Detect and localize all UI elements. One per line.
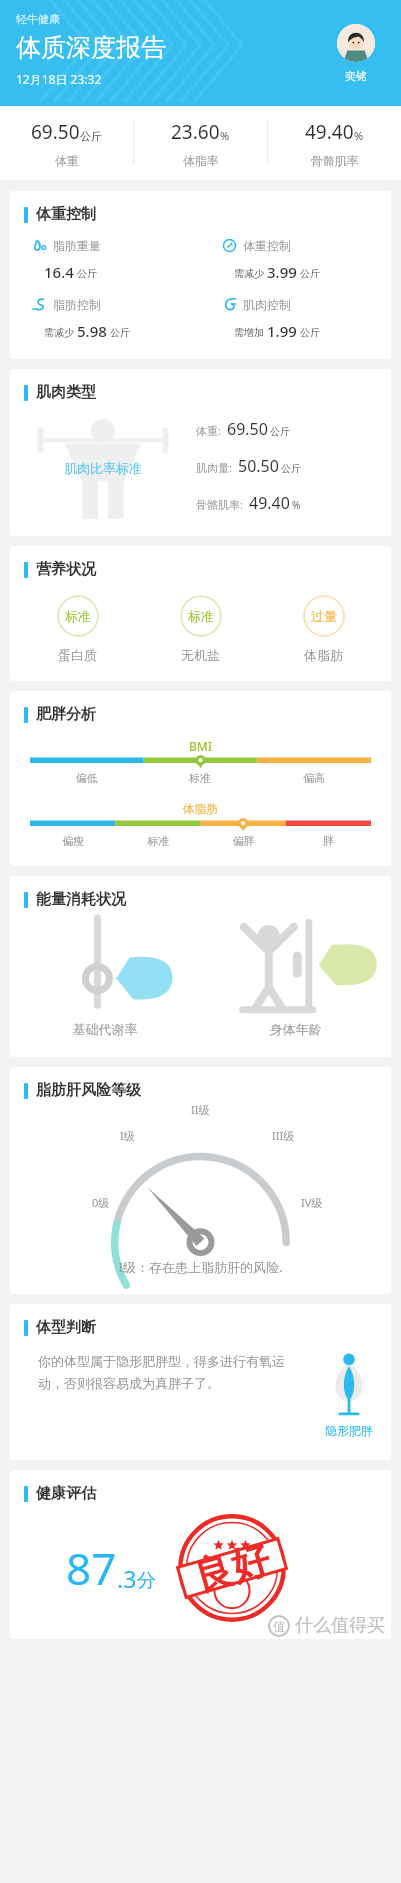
button[interactable]: 过量 — [262, 595, 385, 663]
staticText: 公斤 — [270, 425, 290, 438]
staticText: 体型判断 — [36, 1318, 96, 1337]
staticText: 公斤 — [281, 462, 301, 475]
staticText: % — [292, 498, 301, 512]
staticText: 什么值得买 — [295, 1614, 385, 1637]
staticText: 奕铭 — [345, 69, 367, 83]
staticText: 轻牛健康 — [16, 12, 60, 26]
staticText: 身体年龄 — [200, 1021, 391, 1037]
staticText: 健康评估 — [36, 1484, 96, 1503]
staticText: 肌肉比率标准 — [64, 460, 142, 476]
staticText: 胖 — [286, 834, 371, 848]
staticText: 体脂肪 — [30, 801, 371, 816]
staticText: 脂肪控制 — [53, 297, 101, 312]
staticText: I级：存在患上脂肪肝的风险. — [10, 1258, 391, 1276]
staticText: 脂肪肝风险等级 — [36, 1081, 141, 1100]
staticText: 隐形肥胖 — [325, 1423, 373, 1438]
button[interactable]: 体重控制 — [200, 238, 391, 282]
staticText: 5.98 — [77, 321, 107, 341]
staticText: 脂肪重量 — [53, 238, 101, 253]
staticText: 你的体型属于隐形肥胖型，得多进行有氧运动，否则很容易成为真胖子了。 — [38, 1353, 299, 1392]
staticText: 需减少 — [44, 326, 74, 339]
staticText: 69.50 — [31, 119, 80, 145]
button[interactable]: 69.50 — [0, 106, 133, 180]
staticText: 49.40 — [249, 492, 290, 514]
staticText: 能量消耗状况 — [36, 890, 126, 909]
staticText: III级 — [272, 1128, 295, 1143]
staticText: 肌肉量: — [196, 460, 232, 475]
staticText: 体重 — [55, 153, 79, 168]
button[interactable]: 脂肪控制 — [10, 297, 200, 341]
staticText: 体脂肪 — [304, 647, 343, 663]
button[interactable]: 肌肉控制 — [200, 297, 391, 341]
staticText: 标准 — [143, 771, 257, 785]
staticText: 标准 — [188, 608, 214, 624]
staticText: 偏瘦 — [30, 834, 116, 848]
staticText: 需减少 — [234, 267, 264, 280]
staticText: 偏低 — [30, 771, 143, 785]
staticText: 值 — [273, 1619, 285, 1634]
staticText: 16.4 — [44, 262, 74, 282]
button[interactable]: 49.40 — [268, 106, 401, 180]
staticText: 肌肉类型 — [36, 383, 96, 402]
staticText: 过量 — [311, 608, 337, 624]
button[interactable]: 隐形肥胖 — [307, 1353, 391, 1438]
staticText: 肥胖分析 — [36, 705, 96, 724]
staticText: 骨骼肌率 — [311, 153, 359, 168]
staticText: 无机盐 — [181, 647, 220, 663]
staticText: 体重控制 — [243, 238, 291, 253]
staticText: 基础代谢率 — [10, 1021, 200, 1037]
staticText: 体质深度报告 — [16, 32, 166, 63]
staticText: 标准 — [116, 834, 201, 848]
staticText: 12月18日 23:32 — [16, 71, 102, 87]
staticText: 良好 — [189, 1534, 275, 1602]
button[interactable]: 标准 — [139, 595, 262, 663]
staticText: 标准 — [65, 608, 91, 624]
staticText: 1.99 — [267, 321, 297, 341]
staticText: 69.50 — [227, 418, 268, 440]
staticText: 3.99 — [267, 262, 297, 282]
staticText: 公斤 — [77, 267, 97, 280]
staticText: II级 — [191, 1102, 210, 1117]
staticText: BMI — [30, 738, 371, 754]
staticText: 营养状况 — [36, 560, 96, 579]
staticText: 肌肉控制 — [243, 297, 291, 312]
staticText: % — [220, 128, 230, 143]
staticText: 分 — [137, 1569, 156, 1593]
staticText: IV级 — [301, 1195, 323, 1210]
staticText: 49.40 — [305, 119, 354, 145]
staticText: .3 — [117, 1563, 137, 1594]
button[interactable]: 脂肪重量 — [10, 238, 200, 282]
staticText: 87 — [66, 1538, 117, 1598]
staticText: 需增加 — [234, 326, 264, 339]
staticText: 公斤 — [80, 129, 102, 143]
staticText: 体重控制 — [36, 205, 96, 224]
staticText: 0级 — [92, 1195, 110, 1210]
staticText: 体脂率 — [183, 153, 219, 168]
staticText: 公斤 — [300, 267, 320, 280]
staticText: 体重: — [196, 423, 221, 438]
button[interactable]: 标准 — [16, 595, 139, 663]
staticText: 偏胖 — [201, 834, 286, 848]
staticText: 骨骼肌率: — [196, 497, 243, 512]
staticText: 50.50 — [238, 455, 279, 477]
staticText: 公斤 — [110, 326, 130, 339]
staticText: 23.60 — [171, 119, 220, 145]
staticText: I级 — [120, 1128, 135, 1143]
staticText: % — [354, 128, 364, 143]
button[interactable]: 23.60 — [134, 106, 267, 180]
button[interactable]: User profile 奕铭 — [337, 24, 375, 83]
staticText: 公斤 — [300, 326, 320, 339]
staticText: 蛋白质 — [58, 647, 97, 663]
staticText: 偏高 — [257, 771, 371, 785]
